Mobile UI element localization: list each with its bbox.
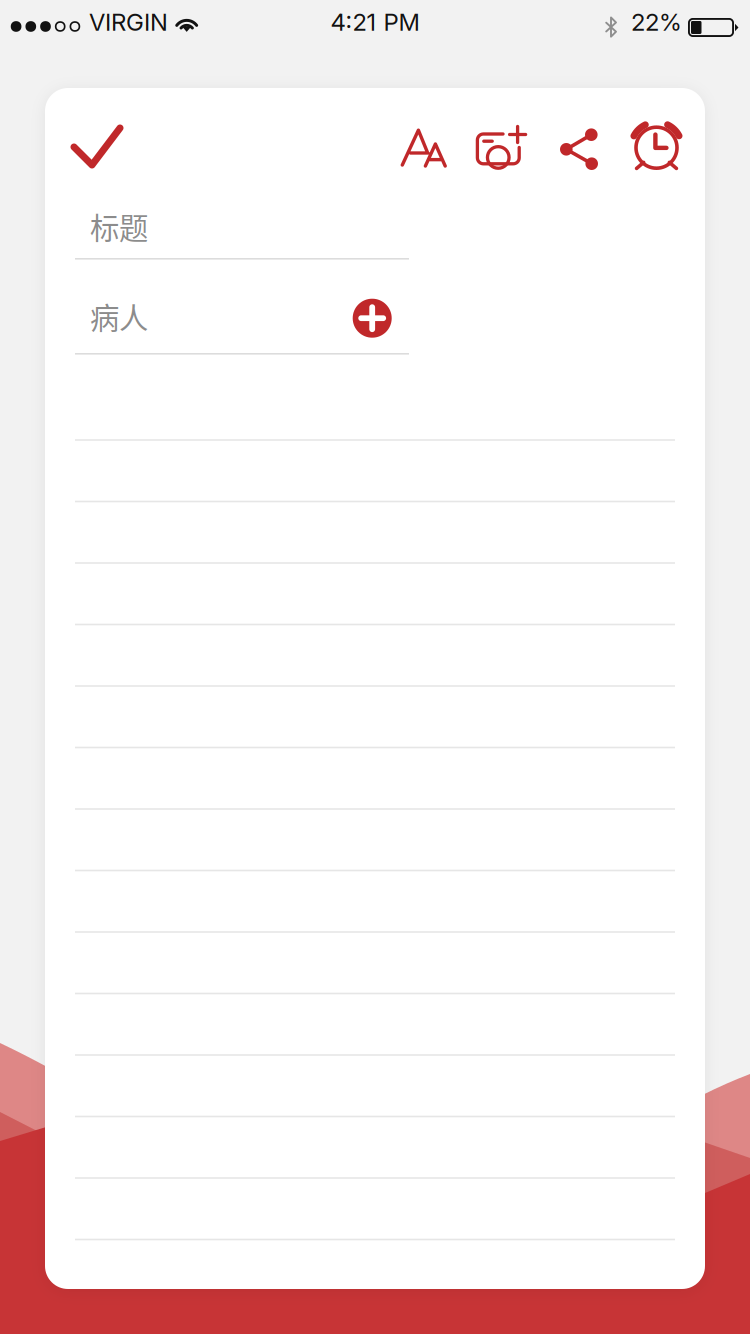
staticText: 标题: [90, 205, 148, 247]
staticText: VIRGIN: [89, 7, 168, 36]
button[interactable]: Add patient: [344, 290, 400, 346]
staticText: 病人: [90, 295, 148, 337]
staticText: 22%: [631, 7, 682, 36]
staticText: 4:21 PM: [330, 7, 419, 36]
